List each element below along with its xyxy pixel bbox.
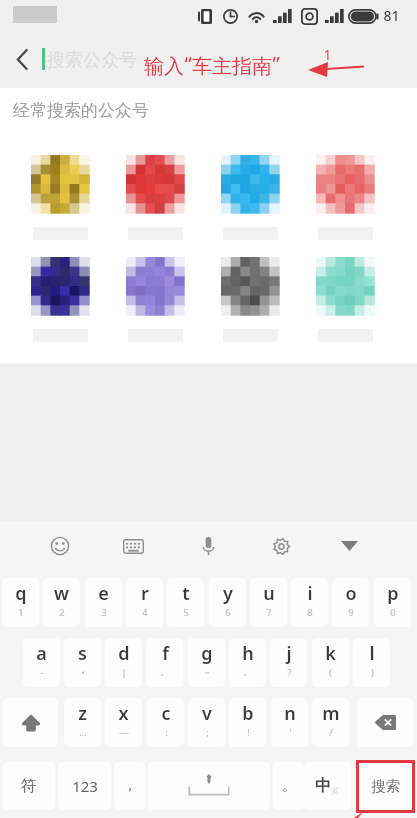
- button[interactable]: u: [250, 578, 287, 627]
- staticText: b: [242, 701, 254, 726]
- button[interactable]: 符: [3, 762, 55, 810]
- button[interactable]: d: [105, 638, 142, 687]
- button[interactable]: Space: [148, 762, 270, 810]
- staticText: •: [81, 666, 85, 679]
- staticText: 搜索: [371, 777, 400, 795]
- button[interactable]: p: [374, 578, 411, 627]
- staticText: 输入: [144, 54, 184, 79]
- button[interactable]: j: [270, 638, 307, 687]
- staticText: x: [118, 701, 129, 726]
- staticText: 4: [142, 606, 148, 619]
- button[interactable]: Back: [2, 30, 42, 88]
- button[interactable]: Hide keyboard: [329, 526, 369, 566]
- staticText: c: [161, 701, 171, 726]
- staticText: 123: [72, 776, 98, 796]
- staticText: ”: [272, 50, 280, 77]
- button[interactable]: h: [229, 638, 266, 687]
- staticText: ~: [204, 666, 210, 679]
- staticText: q: [15, 581, 27, 606]
- staticText: ): [371, 666, 374, 679]
- button[interactable]: ，: [114, 762, 145, 810]
- staticText: 英: [331, 786, 339, 796]
- button[interactable]: [215, 257, 285, 342]
- button[interactable]: 中: [304, 762, 351, 810]
- staticText: 。: [160, 666, 170, 678]
- staticText: 81: [383, 6, 400, 25]
- button[interactable]: [215, 155, 285, 240]
- button[interactable]: o: [332, 578, 369, 627]
- staticText: r: [141, 581, 149, 606]
- staticText: 9: [348, 606, 354, 619]
- staticText: v: [202, 701, 212, 726]
- button[interactable]: Emoji: [40, 526, 80, 566]
- button[interactable]: i: [291, 578, 328, 627]
- button[interactable]: 搜索公众号: [47, 49, 137, 72]
- staticText: f: [162, 641, 169, 666]
- button[interactable]: 。: [273, 762, 304, 810]
- button[interactable]: z: [64, 698, 101, 747]
- button[interactable]: t: [167, 578, 204, 627]
- button[interactable]: s: [64, 638, 101, 687]
- button[interactable]: [25, 155, 95, 240]
- button[interactable]: r: [126, 578, 163, 627]
- staticText: 符: [21, 776, 37, 796]
- button[interactable]: y: [209, 578, 246, 627]
- button[interactable]: x: [105, 698, 142, 747]
- staticText: (: [329, 666, 332, 679]
- staticText: 8: [307, 606, 313, 619]
- staticText: a: [36, 641, 47, 666]
- button[interactable]: [25, 257, 95, 342]
- button[interactable]: Backspace: [357, 698, 413, 747]
- button[interactable]: w: [43, 578, 80, 627]
- staticText: :: [165, 726, 168, 739]
- staticText: “: [184, 50, 192, 77]
- staticText: s: [78, 641, 87, 666]
- button[interactable]: c: [147, 698, 184, 747]
- button[interactable]: f: [146, 638, 183, 687]
- staticText: o: [345, 581, 357, 606]
- button[interactable]: k: [312, 638, 349, 687]
- staticText: e: [98, 581, 109, 606]
- staticText: -: [40, 666, 44, 679]
- button[interactable]: [310, 257, 380, 342]
- button[interactable]: Shift: [3, 698, 58, 747]
- staticText: k: [325, 641, 336, 666]
- button[interactable]: l: [353, 638, 390, 687]
- staticText: ?: [287, 666, 292, 679]
- staticText: z: [78, 701, 87, 726]
- staticText: g: [201, 641, 213, 666]
- staticText: y: [223, 581, 233, 606]
- staticText: 1: [323, 45, 332, 64]
- button[interactable]: n: [271, 698, 308, 747]
- staticText: /: [329, 726, 333, 739]
- staticText: 中: [315, 776, 331, 796]
- staticText: u: [263, 581, 275, 606]
- staticText: d: [118, 641, 130, 666]
- staticText: 经常搜索的公众号: [13, 100, 149, 121]
- button[interactable]: g: [188, 638, 225, 687]
- button[interactable]: q: [2, 578, 39, 627]
- button[interactable]: v: [188, 698, 225, 747]
- button[interactable]: a: [23, 638, 60, 687]
- staticText: h: [242, 641, 254, 666]
- button[interactable]: [310, 155, 380, 240]
- button[interactable]: [120, 257, 190, 342]
- button[interactable]: Keyboard layout: [113, 526, 153, 566]
- staticText: 7: [266, 606, 272, 619]
- button[interactable]: 搜索: [357, 762, 413, 810]
- staticText: |: [121, 666, 127, 679]
- button[interactable]: [120, 155, 190, 240]
- button[interactable]: m: [312, 698, 349, 747]
- button[interactable]: Voice input: [188, 526, 228, 566]
- button[interactable]: Settings: [261, 526, 301, 566]
- staticText: 搜索公众号: [47, 49, 137, 72]
- button[interactable]: 123: [58, 762, 111, 810]
- staticText: 。: [282, 777, 296, 795]
- staticText: 3: [101, 606, 107, 619]
- button[interactable]: e: [85, 578, 122, 627]
- staticText: 5: [183, 606, 189, 619]
- staticText: i: [307, 581, 313, 606]
- staticText: 2: [59, 606, 65, 619]
- button[interactable]: b: [229, 698, 266, 747]
- staticText: j: [286, 641, 292, 666]
